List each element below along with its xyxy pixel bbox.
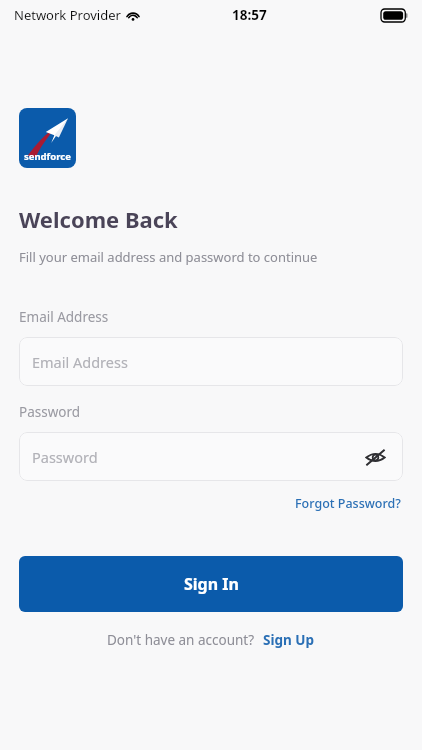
staticText: Sign Up bbox=[263, 631, 315, 649]
staticText: Forgot Password? bbox=[295, 495, 401, 512]
button[interactable]: Forgot Password? bbox=[293, 493, 403, 514]
staticText: Don't have an account? bbox=[107, 631, 255, 649]
staticText: sendforce bbox=[24, 150, 71, 163]
staticText: Sign In bbox=[184, 573, 239, 595]
staticText: Welcome Back bbox=[19, 204, 178, 234]
staticText: Email Address bbox=[19, 308, 109, 326]
button[interactable]: Sign In bbox=[19, 556, 403, 612]
button[interactable]: Email Address bbox=[19, 337, 403, 386]
staticText: Password bbox=[19, 403, 81, 421]
staticText: Network Provider bbox=[14, 6, 121, 24]
staticText: Email Address bbox=[32, 352, 128, 372]
button[interactable]: Sign Up bbox=[262, 629, 316, 651]
staticText: Password bbox=[32, 447, 98, 467]
button[interactable]: Sendforce logo bbox=[19, 108, 76, 168]
staticText: Fill your email address and password to … bbox=[19, 248, 318, 266]
button[interactable]: Show password bbox=[363, 445, 387, 469]
button[interactable]: Password bbox=[19, 432, 403, 481]
staticText: 18:57 bbox=[232, 6, 267, 24]
